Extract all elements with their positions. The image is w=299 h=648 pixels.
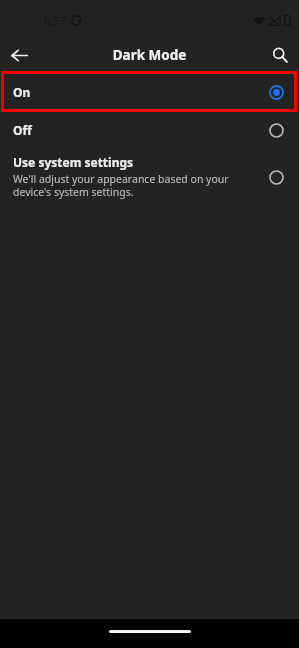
button[interactable]: Off	[0, 111, 299, 148]
staticText: Off	[13, 122, 32, 138]
button[interactable]: Use system settings	[0, 148, 299, 205]
staticText: On	[13, 84, 31, 100]
staticText: 6:37	[44, 13, 66, 28]
staticText: We'll adjust your appearance based on yo…	[13, 172, 229, 199]
button[interactable]: On	[0, 72, 299, 111]
button[interactable]: Back	[0, 38, 38, 72]
staticText: Use system settings	[13, 154, 134, 170]
staticText: Dark Mode	[0, 46, 299, 64]
button[interactable]: Search	[261, 38, 299, 72]
